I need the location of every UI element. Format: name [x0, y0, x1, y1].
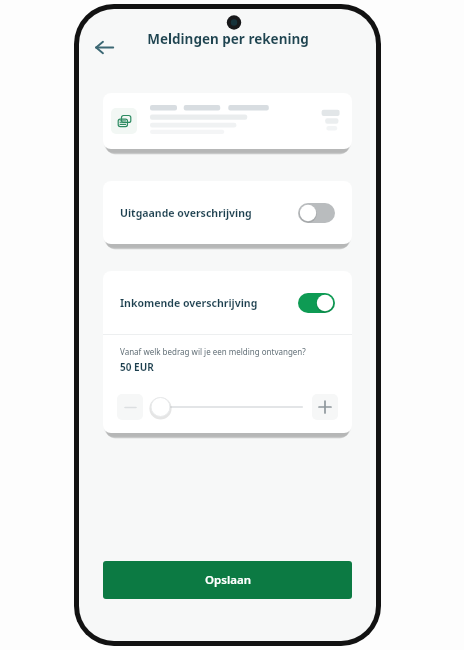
staticText: Uitgaande overschrijving	[120, 206, 298, 220]
button[interactable]: Off	[298, 203, 335, 223]
button[interactable]: Increase amount	[312, 394, 338, 420]
button[interactable]	[149, 394, 306, 420]
staticText: Vanaf welk bedrag wil je een melding ont…	[120, 346, 306, 357]
staticText: Meldingen per rekening	[147, 30, 309, 48]
button[interactable]: Uitgaande overschrijving	[103, 181, 352, 244]
button[interactable]: Back	[89, 32, 119, 62]
button[interactable]: Opslaan	[103, 561, 352, 599]
button[interactable]: Inkomende overschrijving	[103, 271, 352, 334]
button[interactable]	[103, 93, 352, 149]
staticText: Inkomende overschrijving	[120, 296, 298, 310]
button[interactable]: On	[298, 293, 335, 313]
button[interactable]: Decrease amount	[117, 394, 143, 420]
staticText: Opslaan	[205, 572, 251, 588]
staticText: 50 EUR	[120, 360, 154, 374]
